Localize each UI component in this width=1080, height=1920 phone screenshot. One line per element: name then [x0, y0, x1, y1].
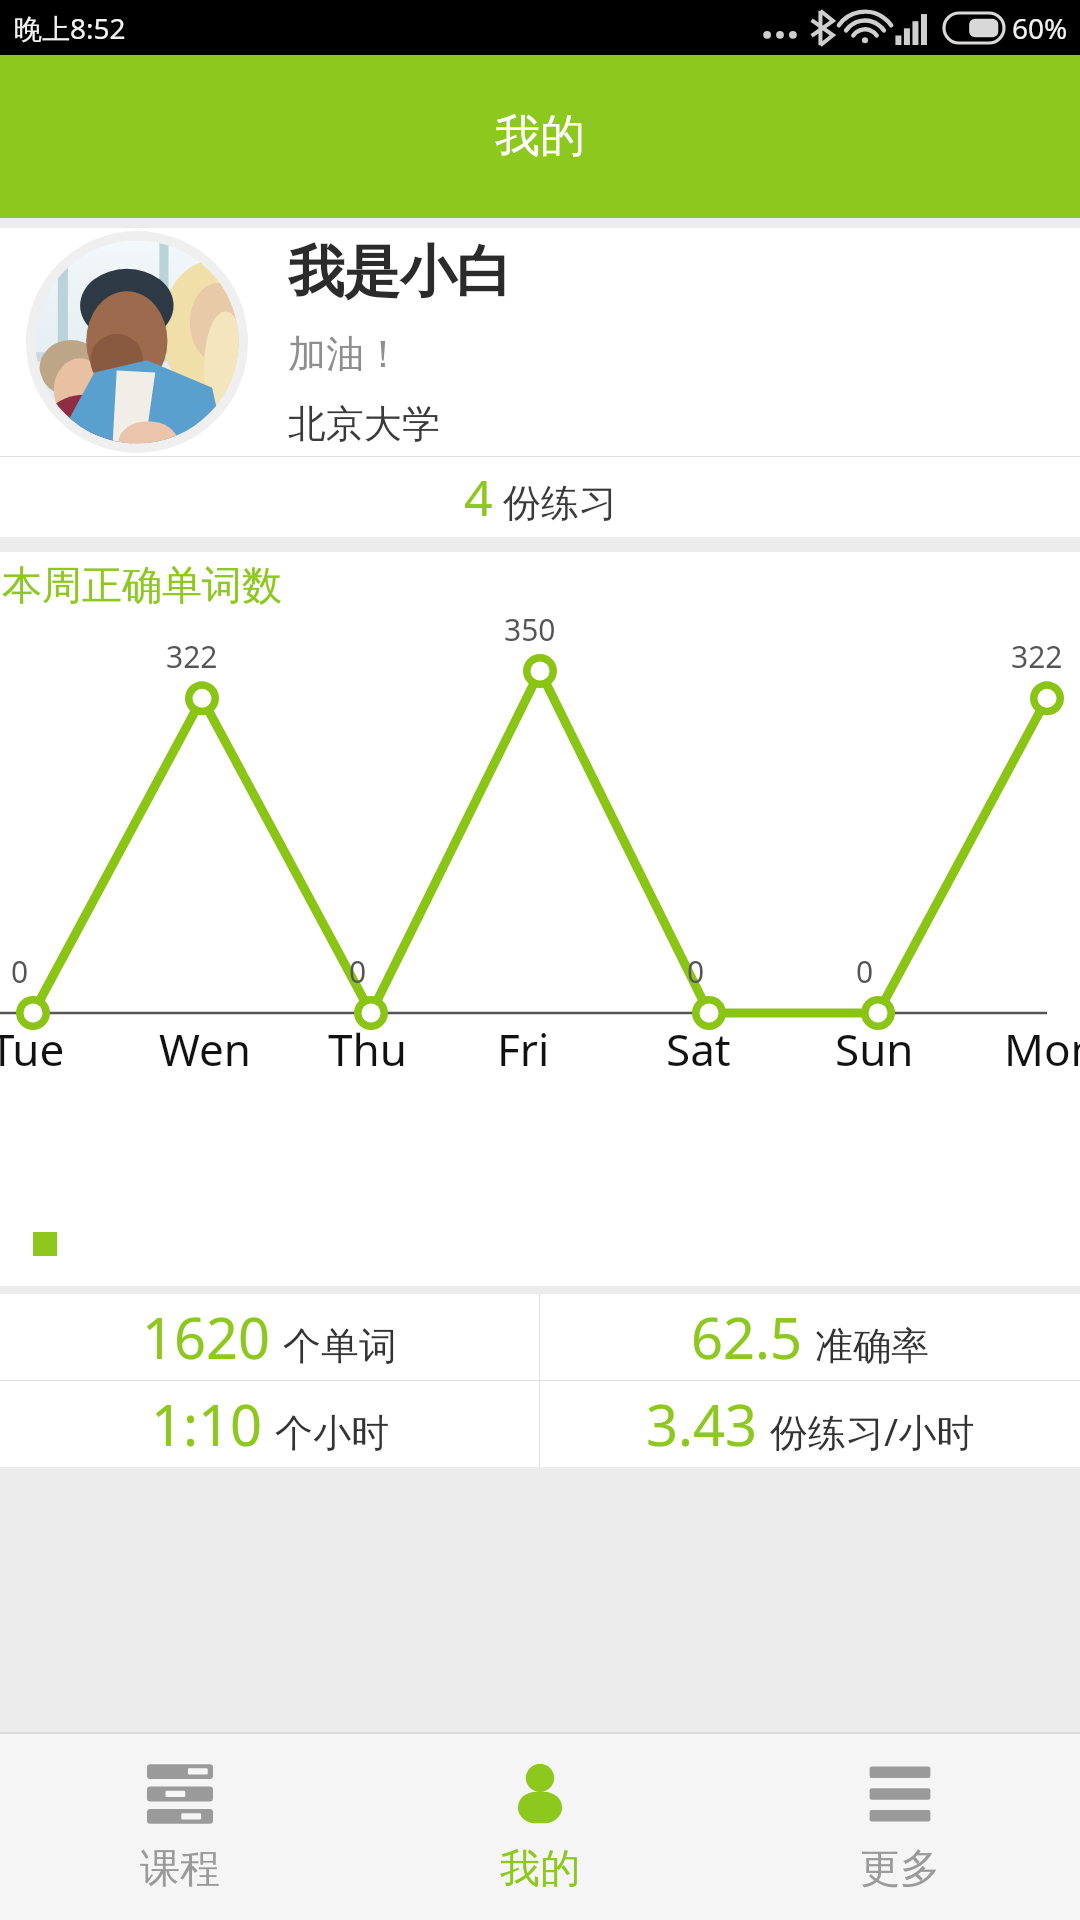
staticText: 本周正确单词数: [2, 560, 282, 610]
button[interactable]: 3.43: [540, 1381, 1080, 1467]
staticText: 加油！: [288, 330, 402, 378]
staticText: Sat: [666, 1019, 731, 1079]
staticText: 4: [464, 463, 493, 531]
staticText: 更多: [860, 1843, 940, 1893]
button[interactable]: 我的: [360, 1734, 720, 1920]
staticText: 0: [856, 951, 874, 992]
staticText: 62.5: [691, 1299, 803, 1375]
staticText: 份练习/小时: [770, 1405, 975, 1457]
staticText: Sun: [835, 1019, 914, 1079]
staticText: 0: [687, 951, 705, 992]
staticText: Fri: [497, 1019, 550, 1079]
staticText: 份练习: [503, 479, 617, 527]
staticText: 我的: [500, 1843, 580, 1893]
staticText: 0: [349, 951, 367, 992]
staticText: 个小时: [275, 1409, 389, 1457]
staticText: 我是小白: [288, 237, 512, 308]
button[interactable]: 4: [0, 457, 1080, 537]
staticText: 322: [166, 636, 218, 677]
staticText: 1:10: [151, 1386, 263, 1462]
staticText: Thu: [328, 1019, 407, 1079]
button[interactable]: 1620: [0, 1294, 539, 1380]
staticText: Mon: [1004, 1019, 1080, 1079]
staticText: Wen: [159, 1019, 252, 1079]
staticText: 322: [1011, 636, 1063, 677]
staticText: 60%: [1012, 9, 1068, 47]
staticText: 北京大学: [288, 400, 440, 448]
staticText: Tue: [0, 1019, 65, 1079]
staticText: 0: [11, 951, 29, 992]
button[interactable]: 课程: [0, 1734, 360, 1920]
staticText: 准确率: [815, 1322, 929, 1370]
button[interactable]: 62.5: [540, 1294, 1080, 1380]
staticText: 3.43: [646, 1386, 758, 1462]
button[interactable]: 1:10: [0, 1381, 539, 1467]
staticText: 晚上8:52: [14, 9, 126, 47]
staticText: 课程: [140, 1843, 220, 1893]
staticText: 350: [504, 609, 556, 650]
staticText: 我的: [495, 108, 585, 165]
staticText: 1620: [142, 1299, 271, 1375]
staticText: 个单词: [283, 1322, 397, 1370]
button[interactable]: 更多: [720, 1734, 1080, 1920]
button[interactable]: 我是小白: [0, 228, 1080, 456]
